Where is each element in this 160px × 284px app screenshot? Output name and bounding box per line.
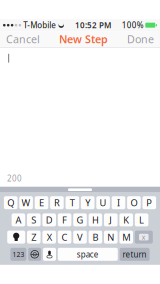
staticText: U <box>100 196 107 209</box>
button[interactable]: C <box>58 231 71 244</box>
staticText: F <box>62 214 67 226</box>
staticText: T-Mobile <box>23 20 56 30</box>
button[interactable]: Delete <box>135 231 153 244</box>
button[interactable]: L <box>135 213 148 226</box>
staticText: T <box>70 196 75 209</box>
button[interactable]: New Step <box>59 28 108 50</box>
button[interactable]: Next keyboard <box>28 248 41 261</box>
staticText: P <box>146 196 152 209</box>
button[interactable]: V <box>73 231 87 244</box>
staticText: Y <box>85 196 90 209</box>
button[interactable]: Z <box>27 231 41 244</box>
staticText: X <box>47 231 52 243</box>
staticText: 200 <box>7 173 22 184</box>
button[interactable]: J <box>104 213 118 226</box>
staticText: H <box>92 214 99 226</box>
staticText: A <box>15 214 21 226</box>
button[interactable]: I <box>112 196 125 209</box>
button[interactable]: Dictation <box>43 248 56 261</box>
staticText: M <box>122 231 130 243</box>
staticText: K <box>123 214 129 226</box>
staticText: 123 <box>12 250 24 259</box>
staticText: Cancel <box>6 32 40 46</box>
staticText: space <box>77 249 99 260</box>
button[interactable]: M <box>119 231 133 244</box>
staticText: R <box>54 196 60 209</box>
staticText: E <box>39 196 44 209</box>
staticText: 10:52 PM <box>75 20 111 30</box>
button[interactable]: A <box>12 213 25 226</box>
button[interactable]: B <box>89 231 102 244</box>
staticText: L <box>139 214 144 226</box>
button[interactable]: N <box>104 231 118 244</box>
button[interactable]: return <box>120 248 150 261</box>
staticText: return <box>123 249 147 260</box>
button[interactable]: D <box>42 213 56 226</box>
staticText: New Step <box>59 32 108 46</box>
button[interactable]: O <box>127 196 141 209</box>
staticText: J <box>109 214 112 226</box>
button[interactable]: U <box>96 196 110 209</box>
button[interactable]: K <box>119 213 133 226</box>
button[interactable]: Done <box>121 28 160 50</box>
staticText: Q <box>7 196 14 209</box>
button[interactable]: Q <box>4 196 17 209</box>
staticText: N <box>107 231 114 243</box>
staticText: S <box>31 214 36 226</box>
staticText: B <box>92 231 98 243</box>
button[interactable]: F <box>58 213 71 226</box>
staticText: Done <box>127 32 154 46</box>
button[interactable]: W <box>19 196 33 209</box>
button[interactable]: G <box>73 213 87 226</box>
staticText: V <box>77 231 83 243</box>
button[interactable]: Y <box>81 196 94 209</box>
staticText: W <box>22 196 31 209</box>
staticText: Z <box>31 231 36 243</box>
button[interactable]: 123 <box>10 248 26 261</box>
staticText: 100% <box>122 20 144 30</box>
button[interactable]: Shift <box>7 231 25 244</box>
staticText: x <box>142 233 146 242</box>
button[interactable]: S <box>27 213 41 226</box>
staticText: G <box>76 214 83 226</box>
button[interactable]: P <box>142 196 156 209</box>
button[interactable]: X <box>42 231 56 244</box>
staticText: O <box>130 196 137 209</box>
button[interactable]: E <box>35 196 48 209</box>
button[interactable]: H <box>89 213 102 226</box>
button[interactable]: T <box>65 196 79 209</box>
button[interactable]: Cancel <box>0 28 46 50</box>
staticText: I <box>117 196 120 209</box>
staticText: C <box>62 231 68 243</box>
button[interactable]: space <box>58 248 118 261</box>
button[interactable]: R <box>50 196 64 209</box>
staticText: D <box>46 214 53 226</box>
